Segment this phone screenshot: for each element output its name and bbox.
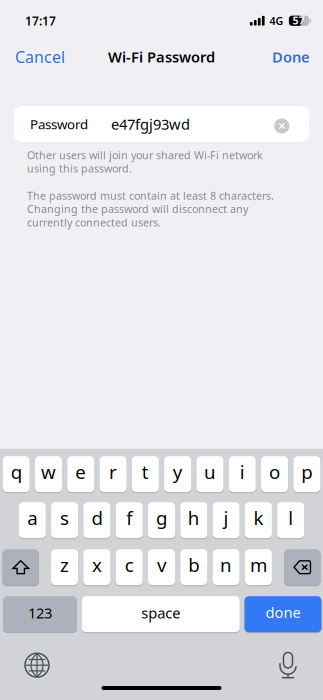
staticText: Wi-Fi Password <box>108 47 215 66</box>
staticText: v <box>157 552 166 577</box>
button[interactable]: w <box>35 456 62 492</box>
staticText: x <box>92 552 102 577</box>
staticText: Other users will join your shared Wi-Fi … <box>27 148 263 175</box>
staticText: d <box>91 505 102 530</box>
staticText: u <box>204 459 216 484</box>
button[interactable]: g <box>148 502 175 538</box>
staticText: 57 <box>292 13 304 28</box>
button[interactable]: b <box>180 549 207 585</box>
button[interactable]: done <box>244 596 321 632</box>
staticText: i <box>240 459 245 484</box>
staticText: r <box>109 459 117 484</box>
button[interactable]: j <box>213 502 240 538</box>
button[interactable]: u <box>196 456 223 492</box>
button[interactable]: i <box>229 456 256 492</box>
staticText: q <box>11 459 22 484</box>
staticText: n <box>220 552 232 577</box>
button[interactable]: Clear text <box>274 118 289 133</box>
staticText: f <box>126 505 132 530</box>
staticText: b <box>188 552 199 577</box>
staticText: 17:17 <box>25 13 56 29</box>
button[interactable]: a <box>19 502 46 538</box>
button[interactable]: c <box>116 549 143 585</box>
staticText: w <box>41 459 56 484</box>
button[interactable]: y <box>164 456 191 492</box>
staticText: z <box>60 552 69 577</box>
button[interactable]: z <box>51 549 78 585</box>
button[interactable]: v <box>148 549 175 585</box>
staticText: 123 <box>28 603 52 622</box>
staticText: c <box>125 552 134 577</box>
staticText: 4G <box>270 14 284 28</box>
staticText: e <box>75 459 86 484</box>
button[interactable]: h <box>180 502 207 538</box>
button[interactable]: r <box>99 456 126 492</box>
staticText: e47fgj93wd <box>111 114 190 134</box>
staticText: j <box>224 505 229 530</box>
staticText: The password must contain at least 8 cha… <box>27 188 274 229</box>
staticText: t <box>142 459 149 484</box>
staticText: k <box>253 505 263 530</box>
button[interactable]: space <box>82 596 240 632</box>
button[interactable]: l <box>277 502 304 538</box>
staticText: h <box>188 505 200 530</box>
button[interactable]: 123 <box>3 596 77 632</box>
button[interactable]: s <box>51 502 78 538</box>
staticText: space <box>141 603 180 622</box>
button[interactable]: k <box>245 502 272 538</box>
staticText: g <box>156 505 167 530</box>
button[interactable]: Dictate <box>272 649 304 681</box>
button[interactable]: Done <box>259 40 323 73</box>
staticText: Done <box>272 47 310 66</box>
button[interactable]: m <box>245 549 272 585</box>
button[interactable]: q <box>3 456 30 492</box>
button[interactable]: f <box>116 502 143 538</box>
button[interactable]: Next keyboard <box>21 649 53 681</box>
button[interactable]: d <box>83 502 110 538</box>
staticText: p <box>301 459 312 484</box>
button[interactable]: p <box>293 456 320 492</box>
staticText: done <box>265 603 300 622</box>
staticText: Password <box>30 115 88 133</box>
button[interactable]: Shift <box>2 549 39 585</box>
staticText: y <box>173 459 183 484</box>
button[interactable]: e <box>67 456 94 492</box>
staticText: Cancel <box>15 46 65 67</box>
staticText: l <box>288 505 293 530</box>
staticText: a <box>27 505 37 530</box>
button[interactable]: Cancel <box>0 39 80 74</box>
button[interactable]: o <box>261 456 288 492</box>
staticText: o <box>269 459 280 484</box>
staticText: s <box>60 505 69 530</box>
button[interactable]: t <box>132 456 159 492</box>
button[interactable]: n <box>213 549 240 585</box>
button[interactable]: x <box>83 549 110 585</box>
button[interactable]: Delete <box>284 549 320 585</box>
staticText: m <box>250 552 267 577</box>
